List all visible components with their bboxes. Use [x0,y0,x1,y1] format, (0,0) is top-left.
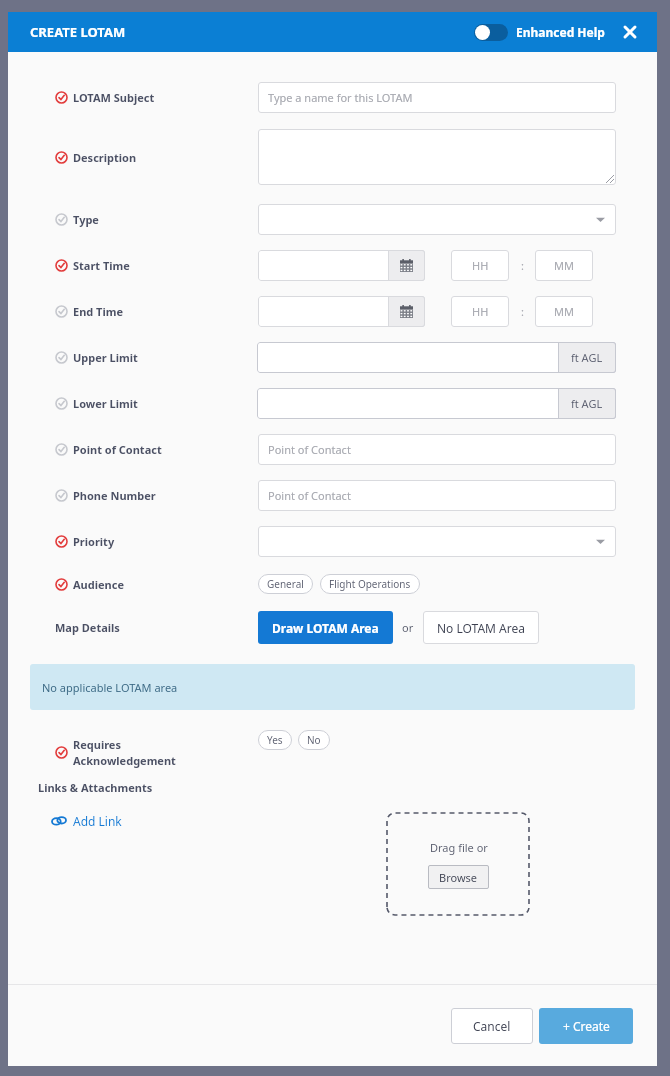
button[interactable]: Draw LOTAM Area [258,611,393,644]
staticText: Drag file or [430,840,488,855]
staticText: : [521,258,524,273]
button[interactable]: Point of Contact [258,480,616,511]
staticText: No LOTAM Area [437,620,525,636]
staticText: HH [472,304,489,319]
staticText: Description [73,150,137,165]
button[interactable]: Priority dropdown [258,526,616,557]
staticText: No [307,733,321,747]
staticText: ft AGL [571,350,603,365]
button[interactable]: Add Link [52,813,122,829]
staticText: : [521,304,524,319]
button[interactable]: Type dropdown [258,204,616,235]
staticText: Start Time [73,258,130,273]
staticText: Audience [73,577,124,592]
staticText: Yes [267,733,283,747]
staticText: Point of Contact [73,442,162,457]
staticText: Priority [73,534,115,549]
staticText: Map Details [55,620,120,635]
staticText: Type a name for this LOTAM [268,90,413,105]
button[interactable]: ft AGL [257,342,616,373]
button[interactable]: Start Time date picker [258,250,425,281]
staticText: Cancel [473,1018,511,1034]
button[interactable]: Type a name for this LOTAM [258,82,616,113]
staticText: Requires Acknowledgement [73,737,176,768]
staticText: General [267,577,304,591]
staticText: Flight Operations [329,577,411,591]
staticText: Lower Limit [73,396,138,411]
staticText: ft AGL [571,396,603,411]
button[interactable]: HH [451,250,509,281]
button[interactable]: Point of Contact [258,434,616,465]
staticText: Point of Contact [268,442,351,457]
button[interactable]: No LOTAM Area [423,611,539,644]
staticText: Type [73,212,99,227]
staticText: Links & Attachments [38,780,153,795]
button[interactable] [258,129,616,185]
button[interactable]: Enhanced Help toggle [474,24,508,41]
staticText: + Create [563,1018,610,1034]
staticText: Enhanced Help [516,24,605,40]
button[interactable]: Flight Operations [320,574,420,594]
staticText: MM [554,304,574,319]
staticText: CREATE LOTAM [30,23,126,41]
button[interactable]: General [258,574,313,594]
button[interactable]: Browse [428,865,489,889]
staticText: End Time [73,304,124,319]
staticText: Browse [439,870,478,885]
staticText: Phone Number [73,488,156,503]
staticText: Add Link [73,813,122,829]
staticText: or [402,620,414,635]
button[interactable]: End Time date picker [258,296,425,327]
button[interactable]: Drop file area [387,813,529,915]
staticText: No applicable LOTAM area [42,680,178,695]
button[interactable]: Yes [258,730,292,750]
staticText: Upper Limit [73,350,138,365]
staticText: MM [554,258,574,273]
button[interactable]: Cancel [451,1008,533,1044]
button[interactable]: ft AGL [257,388,616,419]
button[interactable]: + Create [539,1008,633,1044]
staticText: LOTAM Subject [73,90,155,105]
button[interactable]: MM [535,296,593,327]
staticText: HH [472,258,489,273]
staticText: Point of Contact [268,488,351,503]
button[interactable]: No [298,730,330,750]
button[interactable]: MM [535,250,593,281]
staticText: Draw LOTAM Area [272,620,379,636]
button[interactable]: HH [451,296,509,327]
button[interactable]: Close [619,21,641,43]
